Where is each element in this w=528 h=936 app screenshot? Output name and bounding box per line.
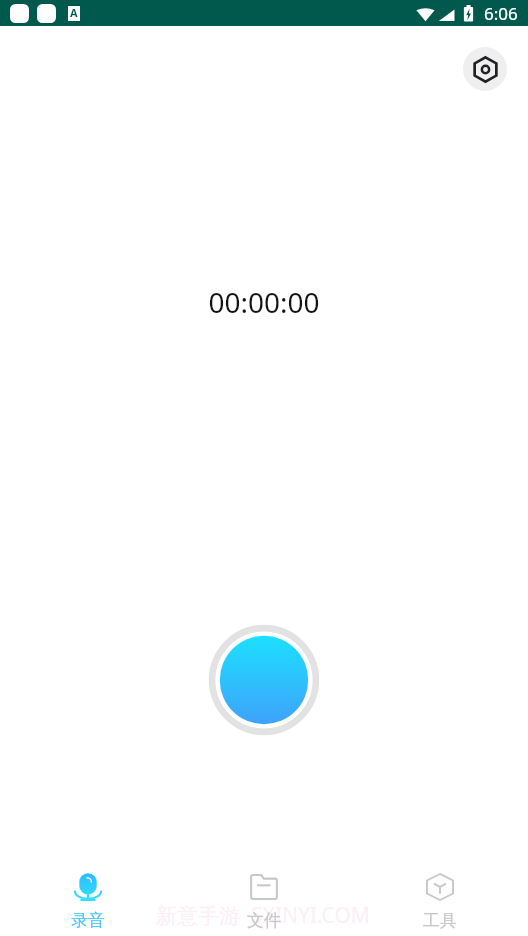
button[interactable]: 录音 xyxy=(0,850,176,936)
staticText: 录音 xyxy=(71,910,105,931)
button[interactable]: Record xyxy=(208,624,320,736)
button[interactable]: 工具 xyxy=(352,850,528,936)
staticText: 00:00:00 xyxy=(208,283,320,321)
staticText: 新意手游 ·SXINYI.COM xyxy=(156,901,370,930)
button[interactable]: 文件 xyxy=(176,850,352,936)
button[interactable]: Settings xyxy=(463,47,507,91)
staticText: 6:06 xyxy=(484,2,518,25)
staticText: 文件 xyxy=(247,910,281,931)
staticText: 工具 xyxy=(423,910,457,931)
staticText: A xyxy=(70,5,78,20)
